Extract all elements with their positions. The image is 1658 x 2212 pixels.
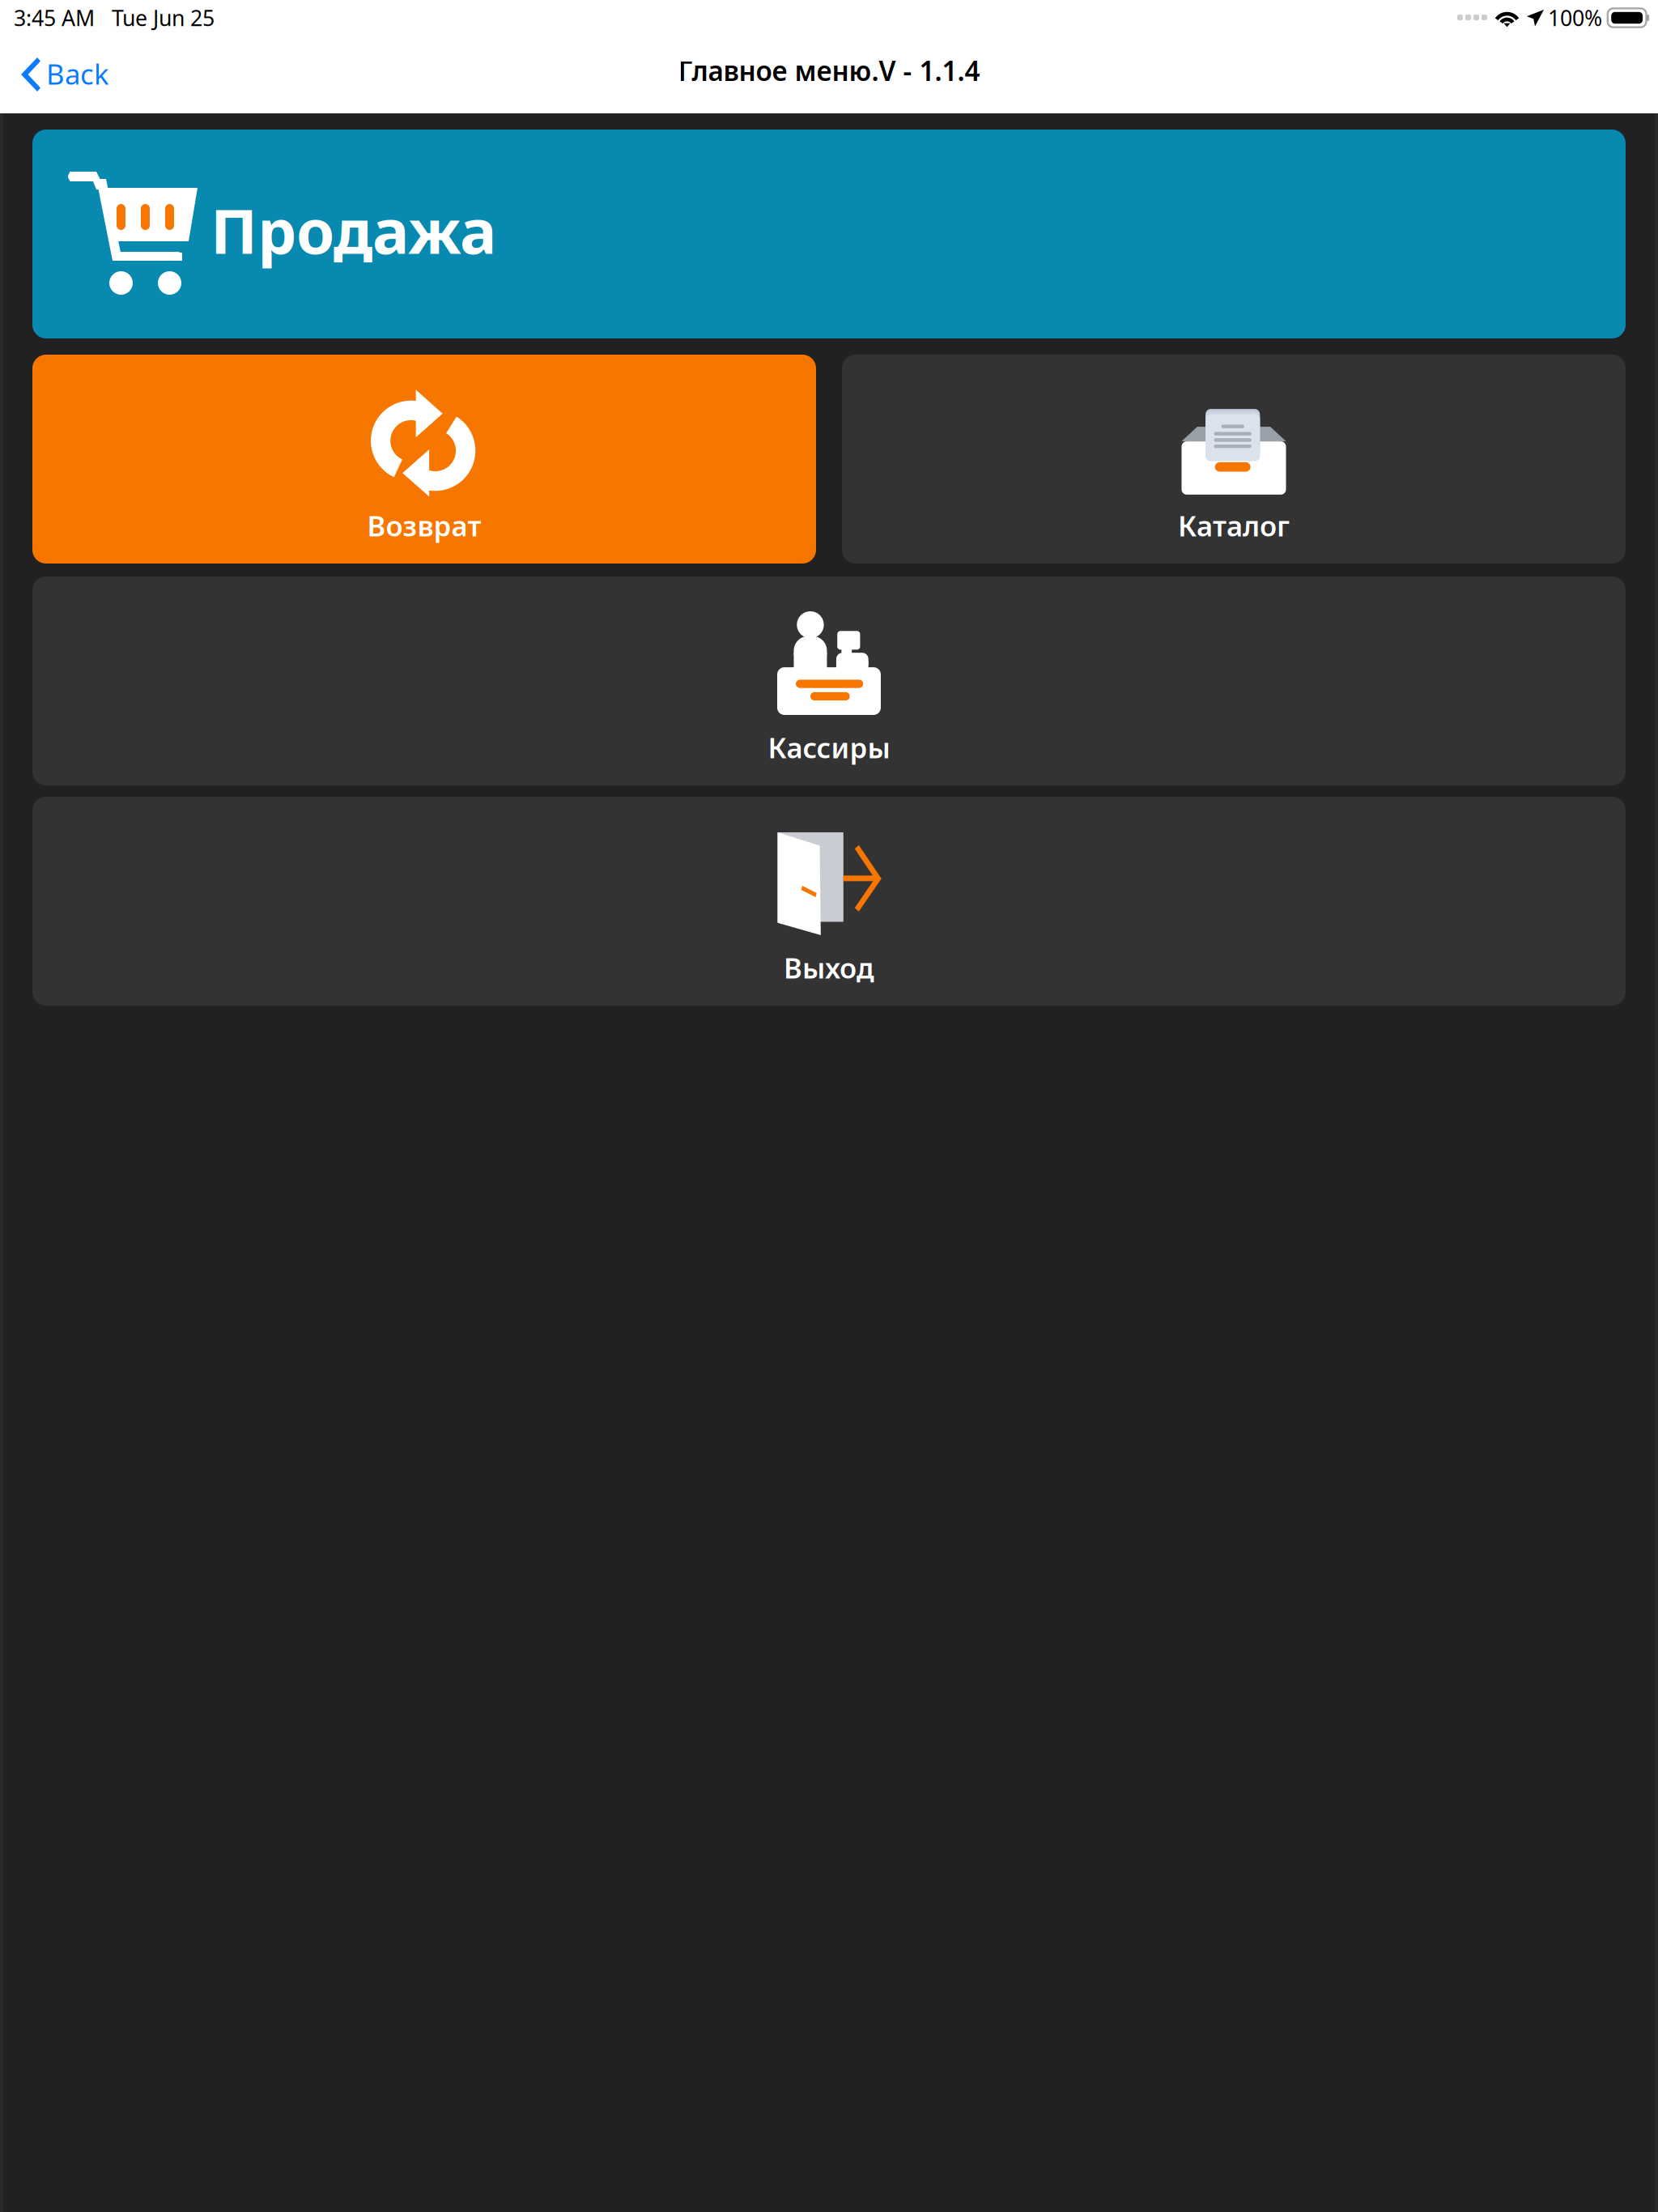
staticText: Back (46, 55, 109, 92)
staticText: Главное меню.V - 1.1.4 (678, 53, 980, 88)
button[interactable]: Каталог (842, 355, 1626, 564)
button[interactable]: Back (0, 36, 130, 113)
staticText: 100% (1548, 3, 1602, 32)
button[interactable]: Кассиры (32, 576, 1626, 785)
staticText: Возврат (367, 507, 481, 544)
button[interactable]: Продажа (32, 130, 1626, 338)
staticText: Каталог (1178, 507, 1290, 544)
button[interactable]: Выход (32, 797, 1626, 1006)
staticText: Tue Jun 25 (112, 3, 215, 32)
staticText: Кассиры (768, 729, 890, 766)
staticText: Выход (784, 949, 874, 986)
button[interactable]: Возврат (32, 355, 816, 564)
staticText: Продажа (210, 189, 496, 271)
staticText: 3:45 AM (14, 3, 95, 32)
